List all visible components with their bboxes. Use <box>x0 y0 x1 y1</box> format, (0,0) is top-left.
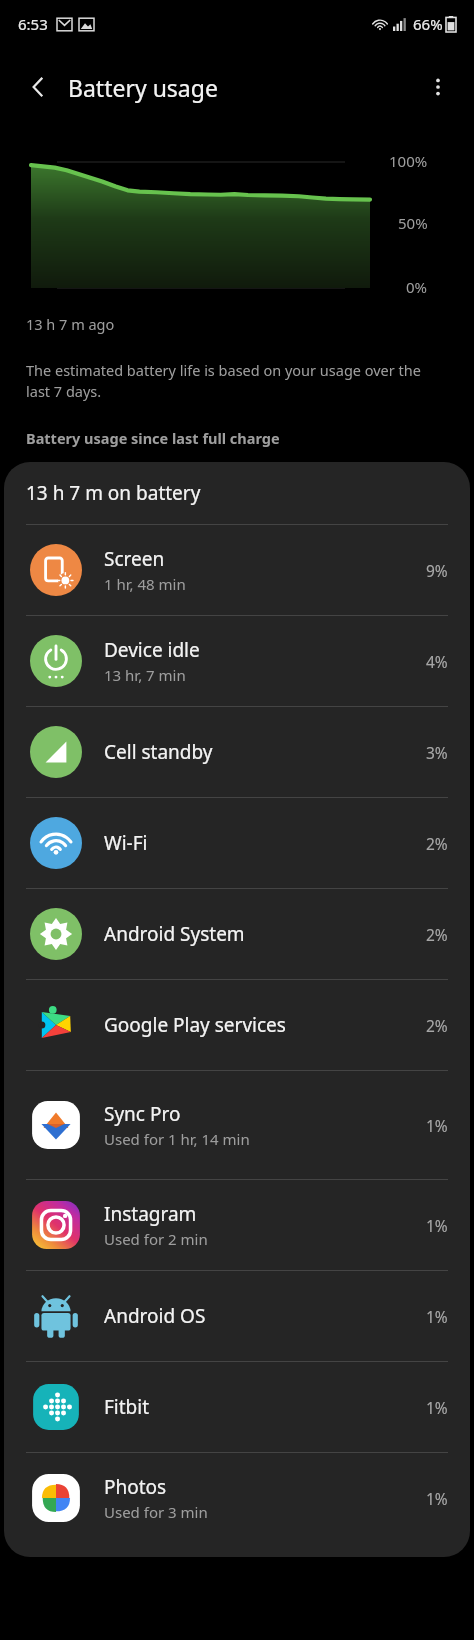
staticText: Android OS <box>104 1303 206 1329</box>
staticText: 6:53 <box>18 14 48 34</box>
staticText: 9% <box>426 560 448 581</box>
staticText: Battery usage <box>68 72 218 103</box>
staticText: 1 hr, 48 min <box>104 574 186 594</box>
staticText: 4% <box>426 651 448 672</box>
staticText: 1% <box>426 1306 448 1327</box>
button[interactable]: Cell standby <box>4 707 470 797</box>
staticText: Instagram <box>104 1201 197 1227</box>
staticText: Cell standby <box>104 739 213 765</box>
button[interactable]: Back <box>16 65 60 109</box>
staticText: 2% <box>426 924 448 945</box>
button[interactable]: Sync Pro <box>4 1071 470 1179</box>
staticText: 13 h 7 m on battery <box>26 480 201 506</box>
staticText: Sync Pro <box>104 1101 181 1127</box>
staticText: 3% <box>426 742 448 763</box>
staticText: Device idle <box>104 637 200 663</box>
staticText: 1% <box>426 1397 448 1418</box>
staticText: 13 hr, 7 min <box>104 665 186 685</box>
button[interactable]: More options <box>416 65 460 109</box>
staticText: 2% <box>426 833 448 854</box>
button[interactable]: Fitbit <box>4 1362 470 1452</box>
staticText: Google Play services <box>104 1012 286 1038</box>
staticText: Android System <box>104 921 245 947</box>
staticText: The estimated battery life is based on y… <box>26 360 434 402</box>
staticText: Wi-Fi <box>104 830 148 856</box>
button[interactable]: Screen <box>4 525 470 615</box>
staticText: Photos <box>104 1474 167 1500</box>
staticText: 100% <box>389 151 428 171</box>
staticText: 66% <box>413 14 443 34</box>
button[interactable]: Android System <box>4 889 470 979</box>
staticText: 13 h 7 m ago <box>26 314 115 334</box>
button[interactable]: Instagram <box>4 1180 470 1270</box>
button[interactable]: Google Play services <box>4 980 470 1070</box>
staticText: 1% <box>426 1115 448 1136</box>
button[interactable]: Android OS <box>4 1271 470 1361</box>
staticText: Fitbit <box>104 1394 150 1420</box>
staticText: 2% <box>426 1015 448 1036</box>
staticText: Used for 3 min <box>104 1502 208 1522</box>
staticText: 50% <box>398 213 428 233</box>
button[interactable]: Photos <box>4 1453 470 1543</box>
staticText: Used for 2 min <box>104 1229 208 1249</box>
staticText: 0% <box>406 277 428 297</box>
staticText: Used for 1 hr, 14 min <box>104 1129 250 1149</box>
button[interactable]: Device idle <box>4 616 470 706</box>
staticText: 1% <box>426 1215 448 1236</box>
staticText: Battery usage since last full charge <box>26 428 280 448</box>
staticText: Screen <box>104 546 165 572</box>
staticText: 1% <box>426 1488 448 1509</box>
button[interactable]: Wi-Fi <box>4 798 470 888</box>
